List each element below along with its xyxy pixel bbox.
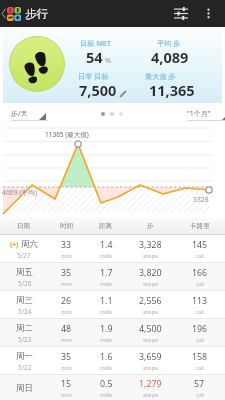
staticText: 周三 (16, 295, 33, 306)
button[interactable]: 周三 (0, 291, 225, 318)
staticText: 1.1 (100, 295, 113, 307)
staticText: min (61, 336, 72, 344)
staticText: mile (100, 391, 113, 399)
staticText: 3,328 (139, 239, 162, 251)
staticText: 5/24 (18, 307, 32, 316)
staticText: 周日 (16, 383, 33, 394)
staticText: 48 (61, 323, 72, 335)
staticText: 周六 (21, 239, 38, 250)
staticText: 11365 (最大值) (45, 130, 89, 139)
staticText: 步 (147, 222, 154, 230)
staticText: 时间 (60, 222, 74, 230)
staticText: 最大值 步 (145, 71, 176, 81)
staticText: 平均 步 (157, 38, 181, 48)
staticText: 57 (194, 378, 205, 390)
staticText: 113 (192, 295, 208, 307)
staticText: 1.9 (100, 323, 113, 335)
staticText: steps (143, 252, 158, 260)
staticText: 158 (192, 351, 208, 363)
button[interactable]: More options (194, 0, 222, 27)
staticText: cal (196, 336, 204, 344)
staticText: 5/22 (18, 363, 32, 372)
staticText: cal (196, 308, 204, 316)
staticText: 1.7 (100, 267, 113, 279)
staticText: 日期 (17, 222, 31, 230)
staticText: steps (143, 308, 158, 316)
staticText: 卡路里 (190, 222, 210, 230)
staticText: (+) (10, 240, 19, 249)
staticText: mile (100, 336, 113, 344)
staticText: 0.5 (100, 378, 113, 390)
staticText: 3328 (193, 195, 209, 204)
staticText: 周一 (16, 351, 33, 362)
staticText: 5/26 (18, 279, 32, 288)
staticText: 1,279 (139, 378, 162, 390)
staticText: 距离 (99, 222, 113, 230)
staticText: 33 (61, 239, 72, 251)
staticText: mile (100, 308, 113, 316)
staticText: 3,820 (139, 267, 162, 279)
staticText: 周五 (16, 267, 33, 278)
button[interactable]: (+) (0, 235, 225, 262)
button[interactable]: "1个月" (187, 108, 225, 121)
staticText: mile (100, 364, 113, 372)
staticText: 26 (61, 295, 72, 307)
staticText: 4,089 (151, 47, 189, 67)
staticText: 1.6 (100, 351, 113, 363)
staticText: steps (143, 336, 158, 344)
staticText: steps (143, 364, 158, 372)
staticText: 日常 目标 (78, 71, 109, 81)
button[interactable]: 周二 (0, 319, 225, 346)
staticText: steps (143, 391, 158, 399)
staticText: min (61, 280, 72, 288)
staticText: 步行 (25, 7, 48, 21)
staticText: 4,500 (139, 323, 162, 335)
staticText: 35 (61, 267, 72, 279)
staticText: 1.4 (100, 239, 113, 251)
staticText: 周二 (16, 323, 33, 334)
staticText: "1个月" (187, 109, 211, 119)
staticText: 7,500 (79, 80, 117, 100)
staticText: % (105, 55, 112, 65)
staticText: 54 (86, 47, 103, 67)
staticText: 15 (61, 378, 72, 390)
staticText: mile (100, 280, 113, 288)
staticText: 5/23 (18, 335, 32, 344)
staticText: cal (196, 252, 204, 260)
staticText: mile (100, 252, 113, 260)
staticText: 196 (192, 323, 208, 335)
button[interactable]: 周一 (0, 347, 225, 374)
staticText: 目标 MET (80, 38, 111, 48)
staticText: 145 (192, 239, 208, 251)
staticText: min (61, 364, 72, 372)
staticText: min (61, 391, 72, 399)
staticText: cal (196, 364, 204, 372)
button[interactable]: Navigate up (0, 0, 21, 27)
button[interactable]: Settings (168, 0, 194, 27)
button[interactable]: Edit daily goal (119, 90, 127, 98)
staticText: 步/天 (11, 109, 28, 119)
staticText: 11,365 (149, 80, 195, 100)
staticText: steps (143, 280, 158, 288)
staticText: 166 (192, 267, 208, 279)
button[interactable]: 周五 (0, 263, 225, 290)
button[interactable]: 步/天 (11, 108, 48, 121)
staticText: 2,556 (139, 295, 162, 307)
staticText: cal (196, 391, 204, 399)
staticText: min (61, 252, 72, 260)
staticText: 4069 (平均) (2, 188, 37, 197)
staticText: cal (196, 280, 204, 288)
staticText: min (61, 308, 72, 316)
staticText: 5/27 (17, 251, 31, 260)
button[interactable]: 周日 (0, 375, 225, 400)
staticText: 35 (61, 351, 72, 363)
staticText: 3,659 (139, 351, 162, 363)
